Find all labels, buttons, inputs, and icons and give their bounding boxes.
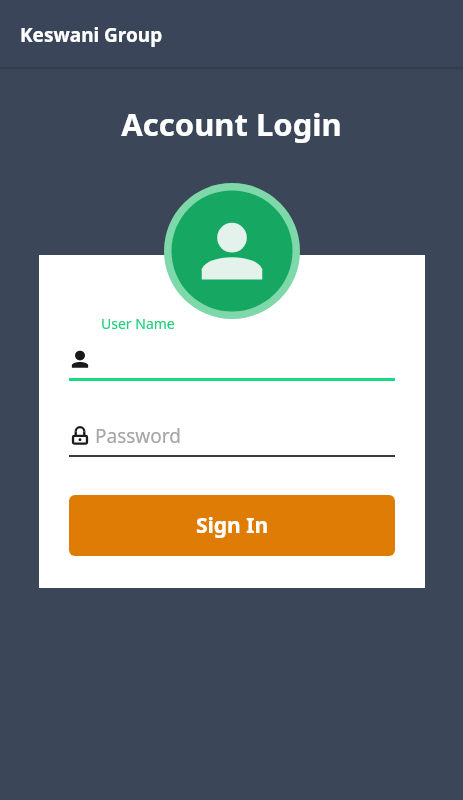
staticText: Sign In: [196, 511, 269, 540]
staticText: Keswani Group: [20, 22, 163, 48]
staticText: Account Login: [0, 103, 463, 145]
staticText: User Name: [101, 314, 175, 333]
button[interactable]: [69, 345, 395, 375]
staticText: Password: [95, 423, 181, 449]
button[interactable]: Password: [69, 421, 395, 451]
other: Account avatar: [164, 183, 300, 319]
button[interactable]: Sign In: [69, 495, 395, 556]
